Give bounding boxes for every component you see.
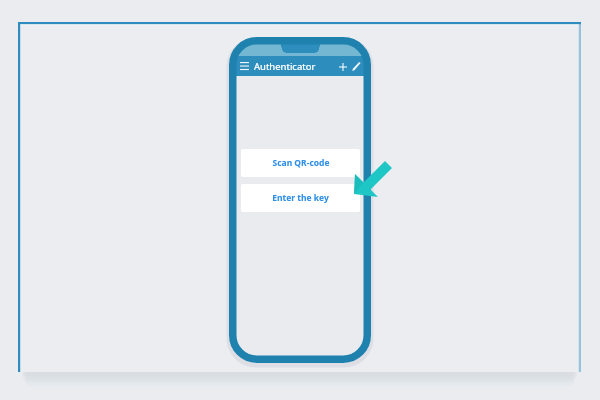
staticText: Scan QR-code xyxy=(272,157,330,169)
staticText: Enter the key xyxy=(272,192,329,204)
button[interactable]: Menu xyxy=(238,60,251,73)
button[interactable]: Add account xyxy=(336,60,349,73)
staticText: Authenticator xyxy=(254,60,316,73)
button[interactable]: Scan QR-code xyxy=(241,149,360,177)
other: Pointer arrow xyxy=(352,150,396,196)
button[interactable]: Enter the key xyxy=(241,184,360,212)
button[interactable]: Edit xyxy=(350,60,363,73)
